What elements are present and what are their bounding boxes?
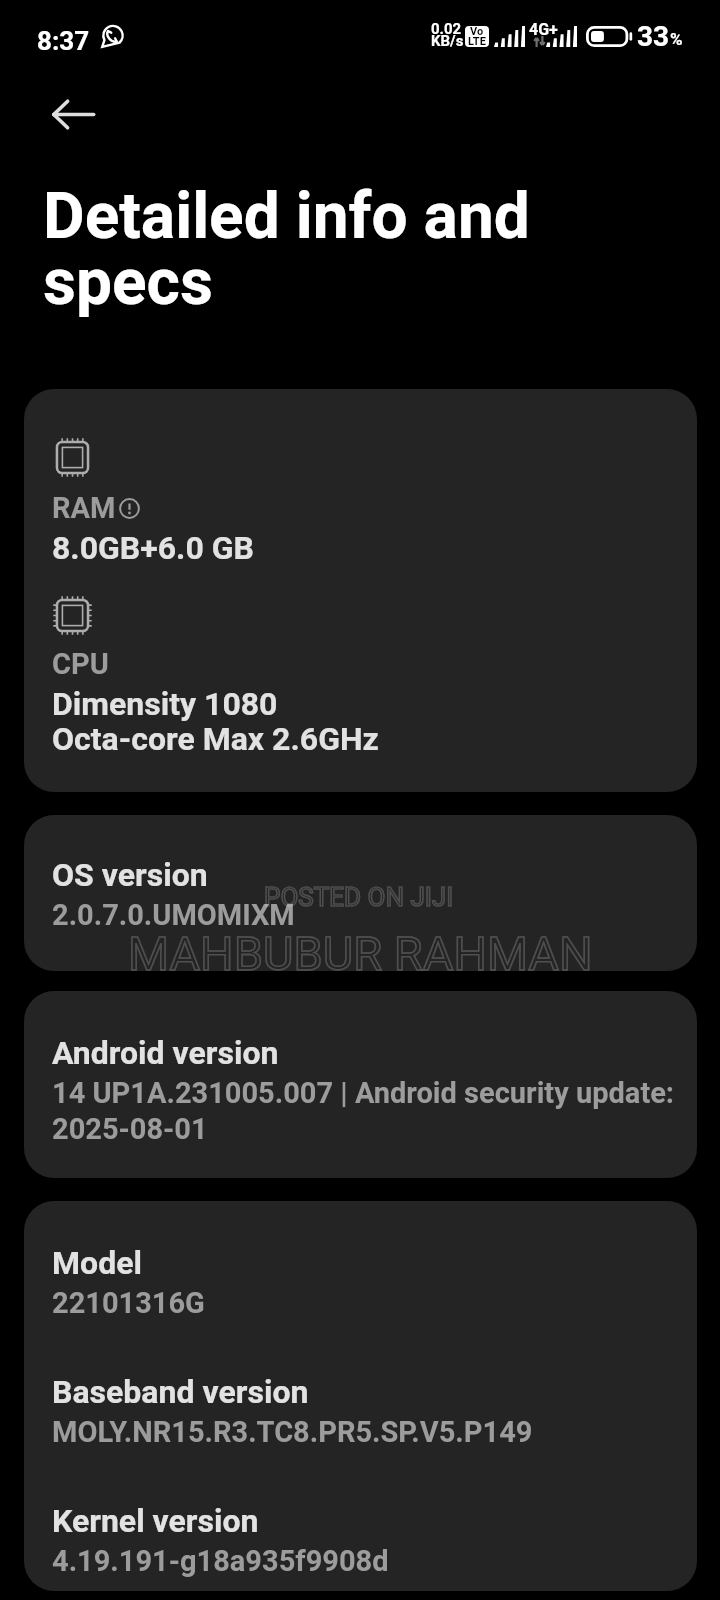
staticText: % [670,29,683,49]
staticText: Kernel version [52,1502,259,1540]
button[interactable]: Android version [24,991,697,1178]
staticText: LTE [468,35,486,47]
staticText: 0.02 [431,20,462,38]
staticText: Vo [470,26,484,38]
staticText: MOLY.NR15.R3.TC8.PR5.SP.V5.P149 [52,1415,533,1449]
staticText: RAM [52,491,116,525]
button[interactable]: RAM info [119,498,140,519]
staticText: Model [52,1244,142,1282]
staticText: POSTED ON JIJI [264,882,454,912]
staticText: Detailed info and specs [43,179,570,320]
staticText: MAHBUBUR RAHMAN [128,926,593,981]
staticText: CPU [52,647,109,681]
button[interactable]: RAM [24,389,697,792]
button[interactable]: OS version [24,815,697,971]
staticText: KB/s [431,32,464,50]
staticText: 4G+ [529,20,558,39]
staticText: 33 [637,20,670,53]
button[interactable]: Back [25,76,122,152]
staticText: 14 UP1A.231005.007 | Android security up… [52,1076,675,1146]
staticText: Baseband version [52,1373,309,1411]
button[interactable]: Model [24,1201,697,1591]
staticText: Dimensity 1080 Octa-core Max 2.6GHz [52,685,379,758]
staticText: 4.19.191-g18a935f9908d [52,1544,389,1578]
staticText: 22101316G [52,1286,205,1320]
staticText: 8.0GB+6.0 GB [52,529,254,567]
staticText: Android version [52,1034,279,1072]
staticText: 2.0.7.0.UMOMIXM [52,898,295,932]
staticText: OS version [52,856,208,894]
staticText: 8:37 [37,26,90,56]
